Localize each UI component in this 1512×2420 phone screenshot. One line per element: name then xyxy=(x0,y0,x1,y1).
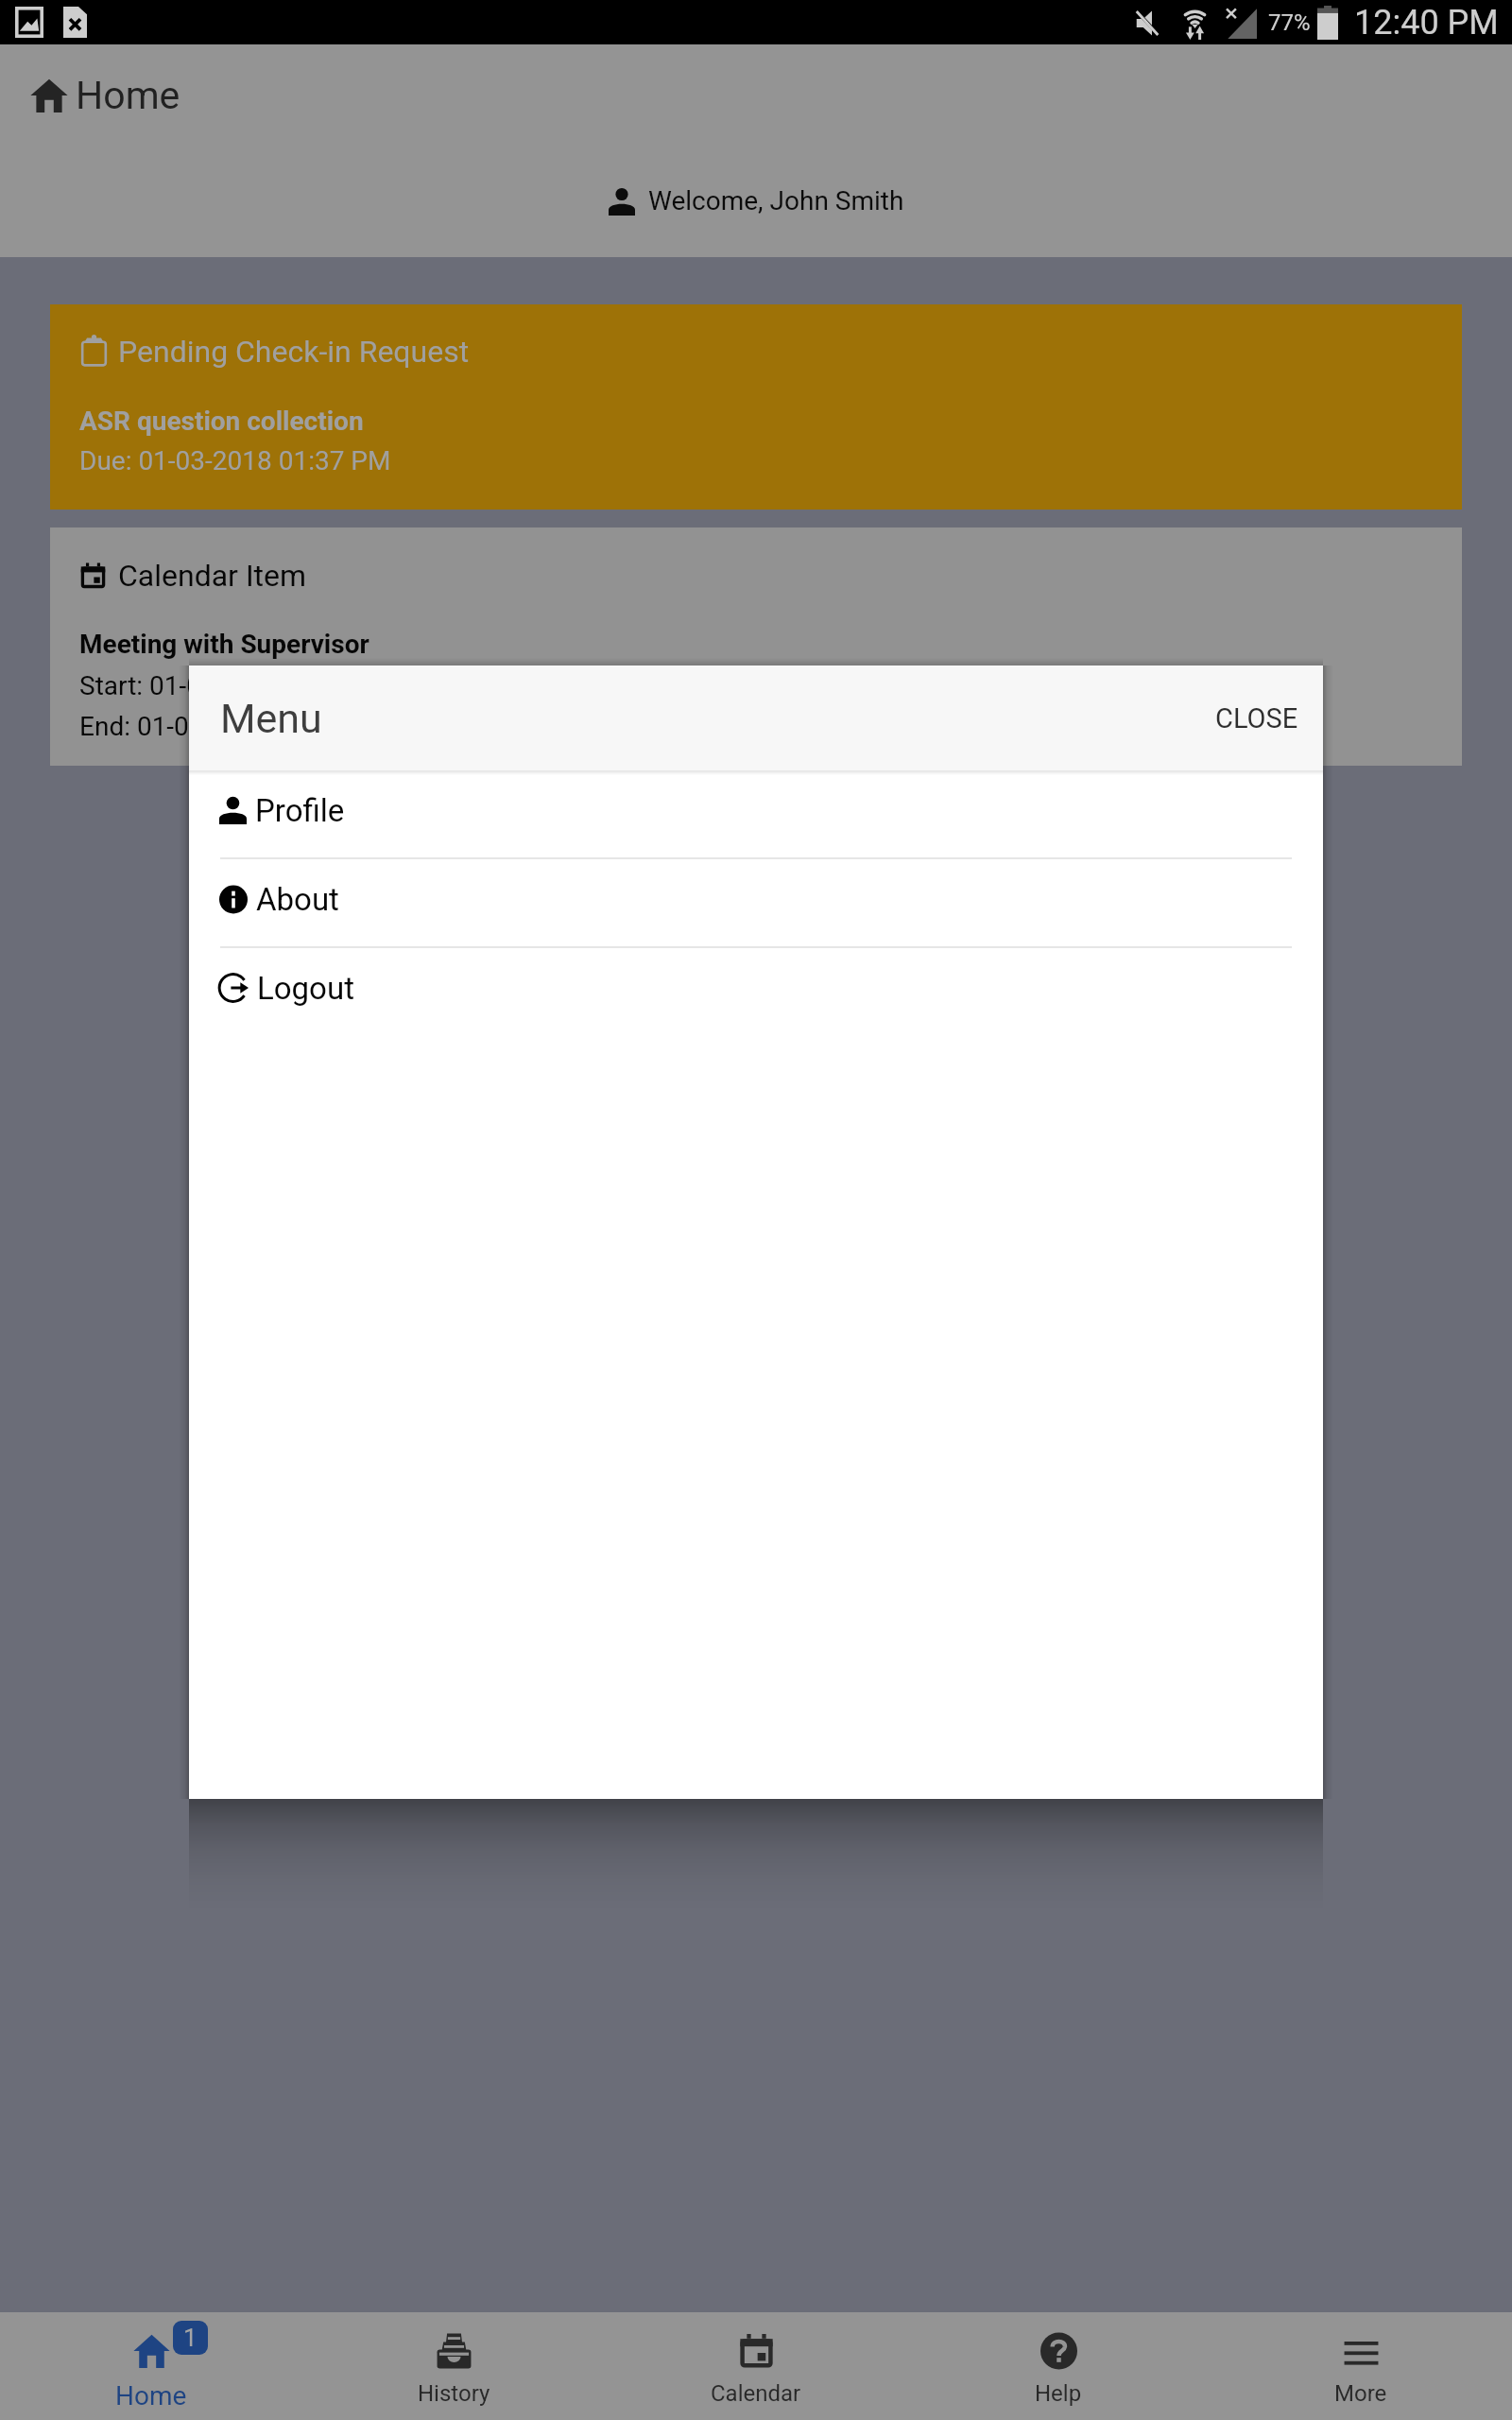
staticText: Home xyxy=(76,73,180,118)
button[interactable]: 1 xyxy=(0,2312,302,2420)
button[interactable]: Pending Check-in Request xyxy=(50,304,1462,510)
staticText: Profile xyxy=(255,792,345,829)
staticText: Meeting with Supervisor xyxy=(79,629,369,660)
button[interactable]: Profile xyxy=(189,770,1323,857)
staticText: More xyxy=(1334,2380,1387,2407)
button[interactable]: Help xyxy=(907,2312,1210,2420)
staticText: Menu xyxy=(220,695,322,742)
staticText: Pending Check-in Request xyxy=(118,334,470,370)
staticText: End: 01-03-2018 02:00 PM xyxy=(79,711,389,742)
staticText: Logout xyxy=(257,970,354,1007)
staticText: About xyxy=(256,881,339,918)
staticText: 77% xyxy=(1268,9,1311,36)
staticText: 1 xyxy=(183,2324,198,2352)
staticText: Calendar Item xyxy=(118,558,307,594)
button[interactable]: Logout xyxy=(189,948,1323,1035)
button[interactable]: History xyxy=(302,2312,605,2420)
button[interactable]: CLOSE xyxy=(1191,683,1323,753)
staticText: 12:40 PM xyxy=(1354,3,1499,43)
button[interactable]: Calendar Item xyxy=(50,527,1462,766)
staticText: CLOSE xyxy=(1215,702,1298,735)
button[interactable]: Calendar xyxy=(605,2312,907,2420)
staticText: History xyxy=(418,2380,490,2407)
button[interactable]: About xyxy=(189,859,1323,946)
button[interactable]: More xyxy=(1210,2312,1512,2420)
staticText: Start: 01-03-2018 01:00 PM xyxy=(79,670,403,701)
staticText: ASR question collection xyxy=(79,406,364,437)
staticText: Due: 01-03-2018 01:37 PM xyxy=(79,445,391,476)
staticText: Welcome, John Smith xyxy=(648,185,904,216)
staticText: Home xyxy=(115,2380,187,2411)
staticText: Calendar xyxy=(711,2380,801,2407)
staticText: Help xyxy=(1035,2380,1082,2407)
